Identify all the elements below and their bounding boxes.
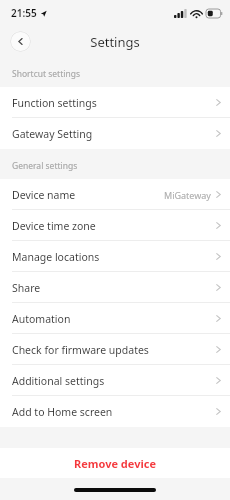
button[interactable]: Additional settings: [0, 365, 230, 396]
staticText: Manage locations: [12, 250, 100, 264]
button[interactable]: Check for firmware updates: [0, 334, 230, 365]
staticText: Add to Home screen: [12, 405, 113, 419]
button[interactable]: Automation: [0, 303, 230, 334]
staticText: Additional settings: [12, 374, 105, 388]
button[interactable]: Device name: [0, 179, 230, 210]
staticText: Share: [12, 281, 41, 295]
button[interactable]: Gateway Setting: [0, 118, 230, 149]
staticText: Settings: [90, 33, 140, 51]
button[interactable]: Function settings: [0, 87, 230, 118]
staticText: Device time zone: [12, 219, 96, 233]
button[interactable]: Manage locations: [0, 241, 230, 272]
button[interactable]: Device time zone: [0, 210, 230, 241]
staticText: 21:55: [11, 6, 37, 20]
button[interactable]: Add to Home screen: [0, 396, 230, 427]
staticText: MiGateway: [164, 189, 211, 201]
staticText: Check for firmware updates: [12, 343, 149, 357]
staticText: Remove device: [74, 456, 156, 471]
staticText: Shortcut settings: [12, 68, 81, 80]
button[interactable]: Remove device: [0, 448, 230, 478]
button[interactable]: Back: [10, 31, 31, 52]
staticText: Gateway Setting: [12, 127, 93, 141]
staticText: Device name: [12, 188, 76, 202]
staticText: Function settings: [12, 96, 97, 110]
staticText: Automation: [12, 312, 71, 326]
button[interactable]: Share: [0, 272, 230, 303]
staticText: General settings: [12, 160, 78, 172]
